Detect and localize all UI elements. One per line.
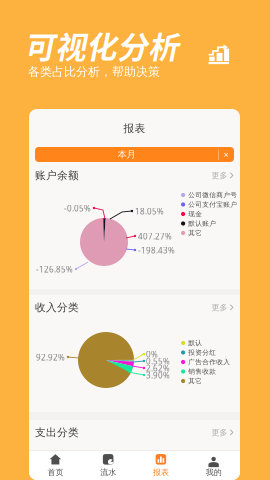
button[interactable]: 我的 [187, 446, 240, 480]
staticText: -198.43% [138, 245, 175, 256]
staticText: 投资分红 [188, 348, 216, 357]
staticText: 92.92% [36, 352, 65, 363]
staticText: 报表 [153, 467, 169, 477]
staticText: 0.55% [146, 356, 170, 367]
staticText: 公司支付宝账户 [188, 200, 237, 209]
staticText: × [223, 148, 228, 161]
staticText: 各类占比分析，帮助决策 [28, 64, 160, 79]
staticText: 更多 [211, 303, 227, 312]
staticText: 我的 [206, 467, 222, 477]
button[interactable]: 报表 [134, 446, 187, 480]
staticText: 默认账户 [188, 219, 216, 228]
staticText: 其它 [188, 377, 202, 385]
staticText: 更多 [211, 428, 227, 437]
staticText: 流水 [100, 467, 116, 477]
staticText: 公司微信商户号 [188, 191, 237, 199]
button[interactable]: 首页 [29, 446, 82, 480]
staticText: 3.90% [146, 370, 170, 381]
staticText: 407.27% [138, 231, 172, 242]
staticText: 首页 [47, 467, 63, 477]
staticText: 2.62% [146, 363, 170, 374]
button[interactable]: 更多 [203, 426, 234, 439]
staticText: 账户余额 [35, 169, 79, 182]
staticText: -126.85% [36, 264, 73, 275]
staticText: 广告合作收入 [188, 358, 230, 366]
staticText: 现金 [188, 210, 202, 218]
staticText: 0% [146, 349, 158, 360]
staticText: 收入分类 [35, 301, 79, 314]
button[interactable]: 本月 [35, 147, 234, 162]
staticText: 其它 [188, 229, 202, 237]
button[interactable]: 更多 [203, 301, 234, 314]
staticText: -0.05% [64, 203, 91, 214]
staticText: 更多 [211, 171, 227, 180]
staticText: 销售收款 [188, 367, 216, 376]
button[interactable]: 更多 [203, 169, 234, 182]
staticText: 可视化分析 [24, 23, 179, 67]
staticText: 支出分类 [35, 426, 79, 439]
button[interactable]: 流水 [82, 446, 135, 480]
staticText: 默认 [188, 339, 202, 347]
button[interactable]: Analytics [203, 39, 234, 70]
staticText: 18.05% [135, 206, 164, 217]
staticText: 报表 [123, 122, 145, 135]
staticText: 本月 [117, 149, 135, 160]
